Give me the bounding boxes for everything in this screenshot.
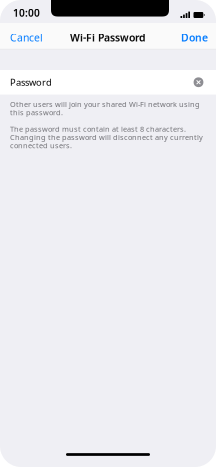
button[interactable]: Done bbox=[175, 23, 216, 50]
staticText: Password bbox=[10, 76, 52, 89]
button[interactable]: Cancel bbox=[0, 23, 49, 50]
staticText: Done bbox=[181, 30, 208, 45]
staticText: Cancel bbox=[10, 30, 43, 45]
staticText: Wi-Fi Password bbox=[70, 30, 146, 45]
staticText: Other users will join your shared Wi-Fi … bbox=[10, 99, 200, 109]
button[interactable]: Clear text bbox=[186, 70, 210, 94]
staticText: The password must contain at least 8 cha… bbox=[10, 124, 186, 134]
staticText: Changing the password will disconnect an… bbox=[10, 132, 203, 142]
staticText: 10:00 bbox=[13, 6, 40, 20]
staticText: this password. bbox=[10, 107, 63, 117]
staticText: connected users. bbox=[10, 140, 72, 150]
